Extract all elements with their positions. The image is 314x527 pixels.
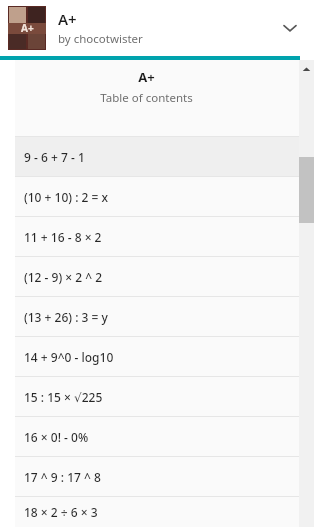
button[interactable]: (12 - 9) × 2 ^ 2 [15,257,299,296]
staticText: 11 + 16 - 8 × 2 [24,229,102,245]
button[interactable]: (10 + 10) : 2 = x [15,177,299,216]
button[interactable]: A+ [0,0,314,56]
staticText: by chocotwister [58,31,143,47]
staticText: 15 : 15 × √225 [24,389,103,405]
staticText: (13 + 26) : 3 = y [24,309,108,325]
staticText: A+ [138,68,155,86]
staticText: 17 ^ 9 : 17 ^ 8 [24,469,101,485]
button[interactable]: 16 × 0! - 0% [15,417,299,456]
staticText: 14 + 9^0 - log10 [24,349,114,365]
staticText: 18 × 2 ÷ 6 × 3 [24,504,98,520]
button[interactable]: 14 + 9^0 - log10 [15,337,299,376]
button[interactable]: 9 - 6 + 7 - 1 [15,137,299,176]
staticText: (10 + 10) : 2 = x [24,189,109,205]
button[interactable]: 17 ^ 9 : 17 ^ 8 [15,457,299,496]
staticText: A+ [58,9,77,29]
button[interactable]: 11 + 16 - 8 × 2 [15,217,299,256]
button[interactable]: (13 + 26) : 3 = y [15,297,299,336]
staticText: Table of contents [100,90,193,106]
button[interactable]: Collapse [270,8,310,48]
button[interactable]: 18 × 2 ÷ 6 × 3 [15,497,299,527]
staticText: (12 - 9) × 2 ^ 2 [24,269,103,285]
button[interactable]: 15 : 15 × √225 [15,377,299,416]
staticText: 16 × 0! - 0% [24,429,89,445]
button[interactable]: Scroll up [299,60,314,78]
staticText: A+ [21,21,34,35]
staticText: 9 - 6 + 7 - 1 [24,149,85,165]
